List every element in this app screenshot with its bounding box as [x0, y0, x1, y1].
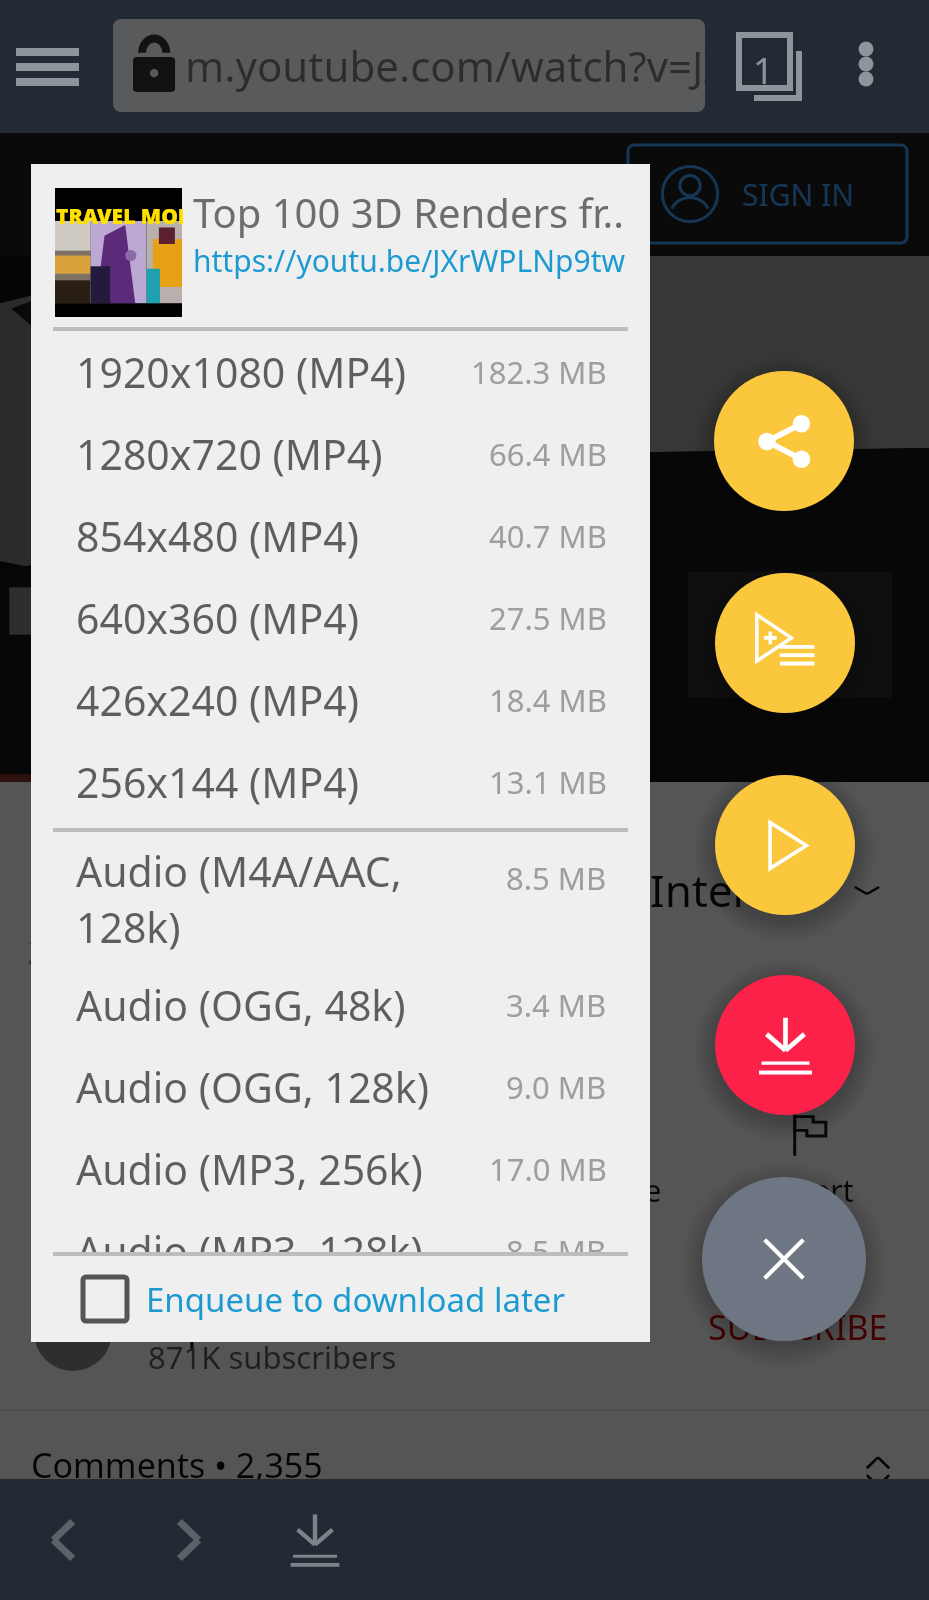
staticText: 8.5 MB [506, 857, 607, 899]
staticText: 640x360 (MP4) [76, 590, 489, 646]
button[interactable]: 854x480 (MP4) [31, 495, 650, 577]
staticText: Comments • 2,355 [31, 1442, 323, 1488]
staticText: 18.4 MB [489, 679, 607, 721]
button[interactable]: Menu [2, 19, 94, 114]
staticText: Audio (OGG, 48k) [76, 977, 506, 1033]
staticText: TRAVEL MONTA [56, 202, 183, 231]
button[interactable]: Tabs [726, 23, 816, 111]
button[interactable]: Download [715, 975, 855, 1115]
staticText: 13.1 MB [489, 761, 607, 803]
staticText: 17.0 MB [489, 1148, 607, 1190]
staticText: 40.7 MB [489, 515, 607, 557]
staticText: 256x144 (MP4) [76, 754, 489, 810]
button[interactable]: SUBSCRIBE [708, 1304, 888, 1350]
staticText: Audio (MP3, 256k) [76, 1141, 489, 1197]
button[interactable]: Share [714, 371, 854, 511]
button[interactable]: 1920x1080 (MP4) [31, 331, 650, 413]
staticText: Enqueue to download later [146, 1277, 566, 1322]
button[interactable]: Add to playlist [715, 573, 855, 713]
staticText: like [70, 1170, 119, 1211]
staticText: Top 100 3D Renders fr.. [193, 185, 624, 239]
staticText: 1 [753, 46, 774, 95]
button[interactable]: Back [20, 1497, 106, 1583]
button[interactable]: report [727, 1112, 891, 1211]
button[interactable]: Audio (MP3, 128k) [31, 1210, 650, 1292]
staticText: 8.5 MB [506, 1230, 607, 1272]
button[interactable]: More options [826, 24, 906, 104]
staticText: 182.3 MB [471, 351, 607, 393]
staticText: 1920x1080 (MP4) [76, 344, 471, 400]
staticText: 27.5 MB [489, 597, 607, 639]
button[interactable]: Close [702, 1177, 866, 1341]
staticText: 854x480 (MP4) [76, 508, 489, 564]
staticText: share [413, 1170, 492, 1211]
button[interactable]: Play [715, 775, 855, 915]
staticText: m.youtube.com/watch?v=JXrW [185, 37, 705, 94]
staticText: Flying the Boeing 747 Cockpit Interior [28, 860, 807, 920]
button[interactable]: share [370, 1112, 534, 1211]
staticText: save [598, 1170, 662, 1211]
button[interactable]: m.youtube.com/watch?v=JXrW [113, 19, 705, 112]
staticText: 2,184,933 views [28, 930, 265, 974]
button[interactable]: 640x360 (MP4) [31, 577, 650, 659]
staticText: SIGN IN [742, 174, 855, 215]
staticText: Top 5 Best [148, 1304, 323, 1353]
button[interactable]: Audio (OGG, 128k) [31, 1046, 650, 1128]
button[interactable]: Downloads [272, 1497, 358, 1583]
button[interactable]: Audio (OGG, 48k) [31, 964, 650, 1046]
button[interactable]: Forward [146, 1497, 232, 1583]
button[interactable]: 256x144 (MP4) [31, 741, 650, 823]
button[interactable]: Enqueue to download later [31, 1256, 650, 1342]
staticText: 9.0 MB [506, 1066, 607, 1108]
button[interactable]: Audio (M4A/AAC, [31, 834, 650, 964]
staticText: https://youtu.be/JXrWPLNp9tw [193, 240, 626, 281]
button[interactable]: 1280x720 (MP4) [31, 413, 650, 495]
button[interactable]: 426x240 (MP4) [31, 659, 650, 741]
button[interactable]: like [12, 1112, 176, 1211]
staticText: 3.4 MB [506, 984, 607, 1026]
button[interactable]: Audio (MP3, 256k) [31, 1128, 650, 1210]
staticText: Audio (M4A/AAC, [76, 843, 402, 899]
staticText: Audio (MP3, 128k) [76, 1223, 506, 1279]
button[interactable]: save [548, 1112, 712, 1211]
staticText: 871K subscribers [148, 1336, 397, 1378]
staticText: dislike [229, 1170, 318, 1211]
staticText: 1280x720 (MP4) [76, 426, 489, 482]
button[interactable]: Sign in [628, 145, 907, 243]
staticText: 426x240 (MP4) [76, 672, 489, 728]
button[interactable]: dislike [191, 1112, 355, 1211]
staticText: 66.4 MB [489, 433, 607, 475]
staticText: Audio (OGG, 128k) [76, 1059, 506, 1115]
staticText: 128k) [76, 899, 181, 955]
staticText: report [765, 1170, 854, 1211]
